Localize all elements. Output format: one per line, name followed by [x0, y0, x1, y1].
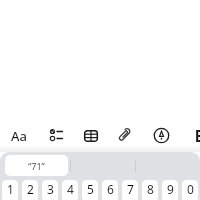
staticText: 5 — [87, 181, 94, 197]
button[interactable]: 3 — [42, 180, 58, 200]
button[interactable] — [115, 125, 133, 144]
button[interactable]: 2 — [22, 180, 38, 200]
staticText: 1 — [7, 181, 14, 197]
button[interactable]: 5 — [82, 180, 98, 200]
button[interactable]: 1 — [2, 180, 18, 200]
button[interactable]: 9 — [162, 180, 178, 200]
staticText: 9 — [167, 181, 174, 197]
button[interactable]: 7 — [122, 180, 138, 200]
button[interactable]: 6 — [102, 180, 118, 200]
button[interactable]: 4 — [62, 180, 78, 200]
staticText: Aa — [11, 127, 27, 145]
button[interactable] — [47, 126, 65, 144]
button[interactable] — [153, 127, 170, 144]
staticText: 3 — [47, 181, 54, 197]
button[interactable] — [84, 130, 98, 142]
button[interactable]: 8 — [142, 180, 158, 200]
button[interactable]: Aa — [8, 126, 30, 146]
staticText: 4 — [67, 181, 74, 197]
staticText: 7 — [127, 181, 134, 197]
staticText: 8 — [147, 181, 154, 197]
button[interactable]: 0 — [182, 180, 198, 200]
staticText: “71” — [28, 160, 45, 172]
staticText: 0 — [187, 181, 194, 197]
staticText: 6 — [107, 181, 114, 197]
button[interactable]: “71” — [5, 155, 68, 176]
staticText: 2 — [27, 181, 34, 197]
